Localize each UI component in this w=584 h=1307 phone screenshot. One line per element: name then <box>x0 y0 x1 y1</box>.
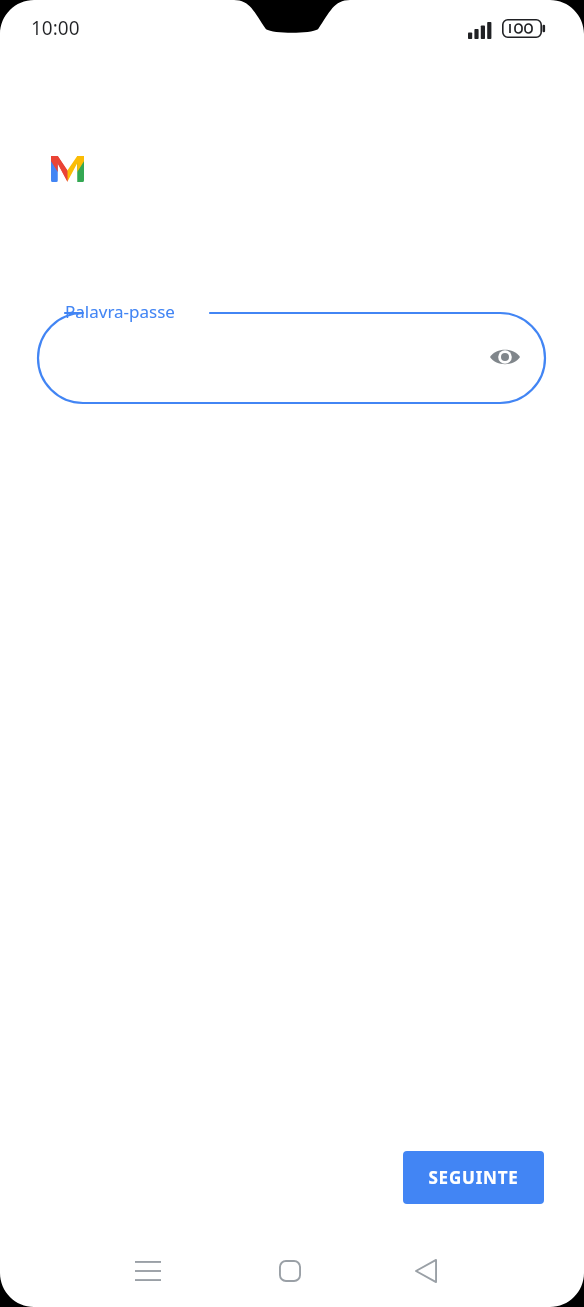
staticText: Palavra-passe <box>65 300 175 323</box>
staticText: SEGUINTE <box>428 1166 519 1189</box>
button[interactable]: Voltar <box>396 1241 456 1301</box>
staticText: 10:00 <box>31 15 80 41</box>
button[interactable]: Recentes <box>118 1241 178 1301</box>
button[interactable]: Início <box>260 1241 320 1301</box>
button[interactable]: Mostrar palavra-passe <box>482 334 528 380</box>
button[interactable]: SEGUINTE <box>403 1151 544 1204</box>
